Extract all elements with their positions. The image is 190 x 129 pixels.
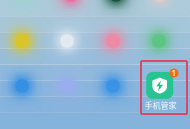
button[interactable]: 1 xyxy=(141,61,187,114)
staticText: 1 xyxy=(171,68,176,78)
staticText: 手机管家 xyxy=(144,99,176,111)
